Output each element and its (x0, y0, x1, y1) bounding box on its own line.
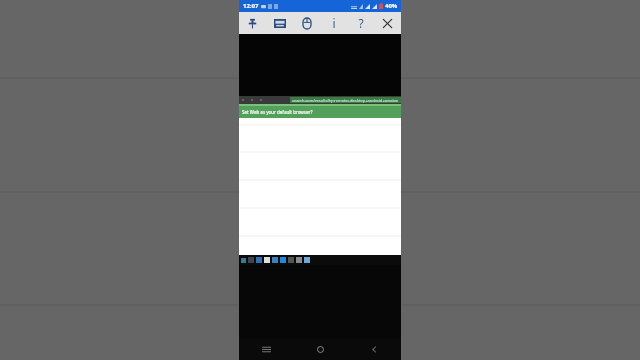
button[interactable]: Close (374, 12, 401, 34)
staticText: 12:07 (243, 2, 259, 10)
button[interactable]: Back (347, 338, 401, 360)
button[interactable]: Pin (239, 12, 266, 34)
staticText: Set Web as your default browser? (242, 109, 313, 115)
button[interactable]: Recent apps (239, 338, 293, 360)
staticText: ? (358, 15, 364, 31)
button[interactable]: Mouse (293, 12, 320, 34)
staticText: search.com/results?q=remote+desktop+andr… (292, 98, 399, 103)
button[interactable]: Info (320, 12, 347, 34)
button[interactable]: Help (347, 12, 374, 34)
button[interactable]: Home (293, 338, 347, 360)
button[interactable]: Keyboard (266, 12, 293, 34)
staticText: 40% (385, 2, 398, 10)
button[interactable]: search.com/results?q=remote+desktop+andr… (290, 97, 401, 103)
staticText: i (332, 15, 336, 31)
